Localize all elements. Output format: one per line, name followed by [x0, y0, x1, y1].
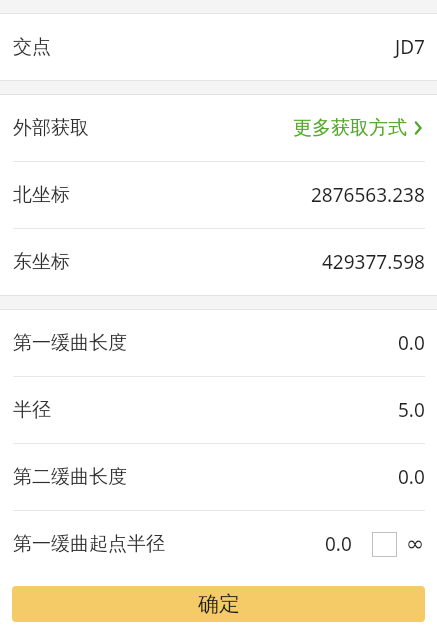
staticText: 外部获取: [13, 116, 89, 140]
staticText: 5.0: [398, 397, 425, 423]
staticText: 交点: [13, 35, 51, 59]
staticText: 0.0: [325, 531, 352, 557]
staticText: 第二缓曲长度: [13, 465, 127, 489]
staticText: 0.0: [398, 464, 425, 490]
staticText: 2876563.238: [311, 182, 425, 208]
button[interactable]: 半径: [0, 377, 437, 443]
staticText: 第一缓曲起点半径: [13, 532, 165, 556]
button[interactable]: 北坐标: [0, 162, 437, 228]
staticText: ∞: [406, 531, 425, 557]
staticText: 北坐标: [13, 183, 70, 207]
staticText: 更多获取方式: [293, 116, 407, 140]
staticText: 429377.598: [322, 249, 425, 275]
button[interactable]: 外部获取: [0, 95, 437, 161]
button[interactable]: 交点: [0, 14, 437, 80]
staticText: 0.0: [398, 330, 425, 356]
staticText: 确定: [198, 591, 240, 617]
button[interactable]: 第一缓曲起点半径: [0, 511, 437, 577]
staticText: 半径: [13, 398, 51, 422]
staticText: 第一缓曲长度: [13, 331, 127, 355]
button[interactable]: 无穷大: [372, 532, 397, 557]
button[interactable]: 第一缓曲长度: [0, 310, 437, 376]
button[interactable]: 第二缓曲长度: [0, 444, 437, 510]
button[interactable]: 确定: [12, 586, 425, 622]
staticText: JD7: [395, 34, 425, 60]
button[interactable]: 东坐标: [0, 229, 437, 295]
staticText: 东坐标: [13, 250, 70, 274]
